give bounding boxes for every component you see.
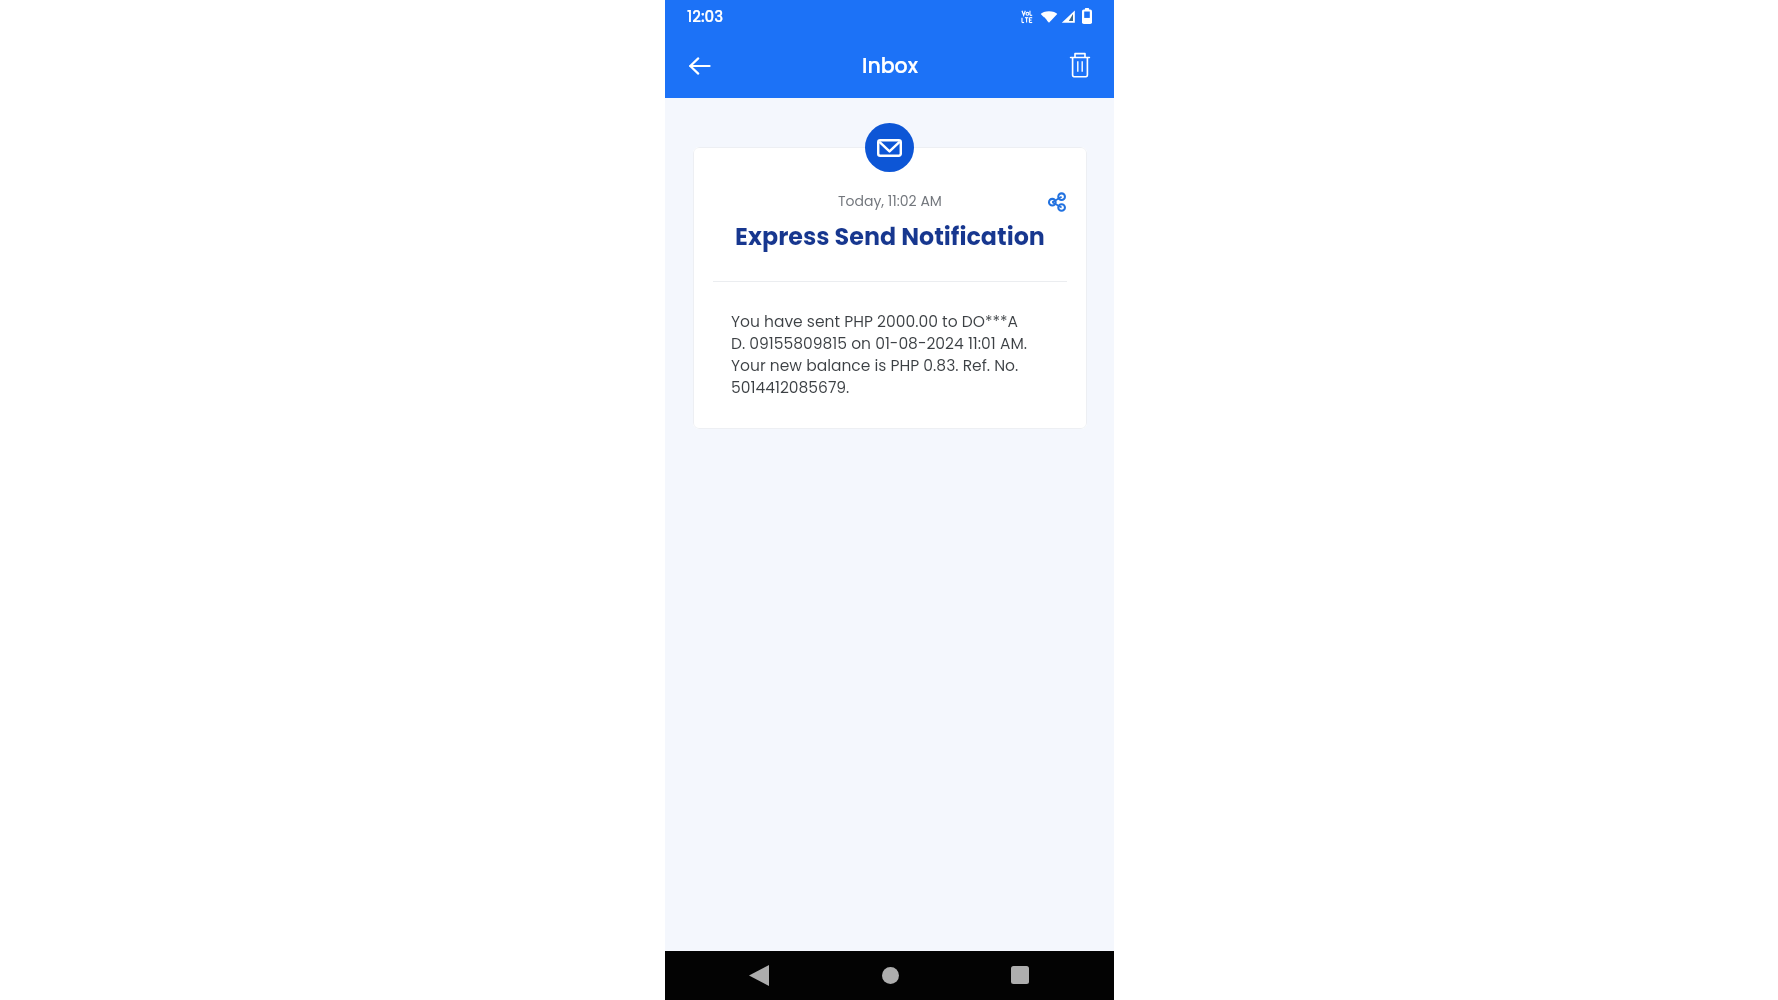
staticText: Express Send Notification (693, 220, 1087, 253)
button[interactable]: Recents (1003, 958, 1037, 992)
button[interactable]: Today, 11:02 AM (693, 147, 1087, 429)
button[interactable]: Back (677, 44, 721, 88)
button[interactable]: Home (873, 958, 907, 992)
button[interactable]: Message (865, 123, 914, 172)
staticText: 12:03 (687, 6, 724, 27)
button[interactable]: Share (1042, 185, 1074, 217)
button[interactable]: Back (742, 958, 776, 992)
button[interactable]: Delete (1058, 44, 1102, 88)
staticText: Inbox (862, 51, 918, 80)
staticText: You have sent PHP 2000.00 to DO***A D. 0… (731, 311, 1027, 399)
staticText: Today, 11:02 AM (838, 191, 942, 211)
